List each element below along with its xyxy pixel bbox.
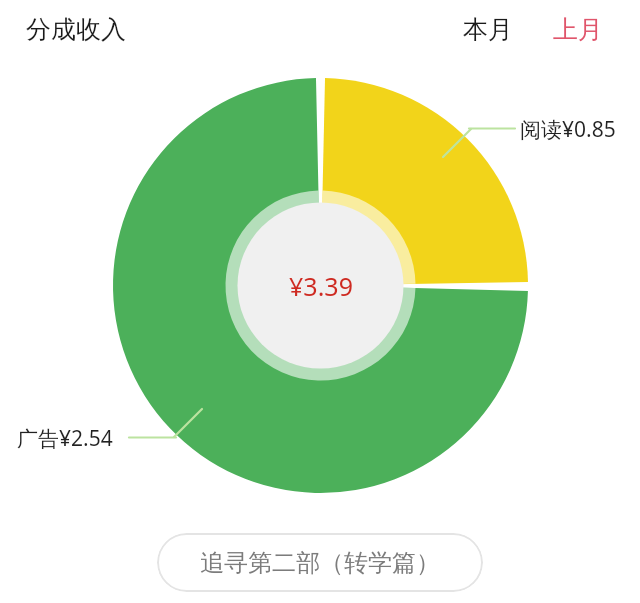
staticText: 分成收入	[26, 14, 126, 45]
staticText: 阅读¥0.85	[520, 115, 616, 144]
button[interactable]: 上月	[551, 12, 605, 47]
button[interactable]: 追寻第二部（转学篇）	[157, 533, 483, 592]
staticText: 本月	[463, 14, 513, 45]
staticText: ¥3.39	[289, 269, 353, 302]
staticText: 上月	[553, 14, 603, 45]
button[interactable]: 分成收入	[24, 12, 128, 47]
staticText: 广告¥2.54	[17, 424, 113, 453]
staticText: 追寻第二部（转学篇）	[200, 548, 440, 578]
button[interactable]: 本月	[461, 12, 515, 47]
